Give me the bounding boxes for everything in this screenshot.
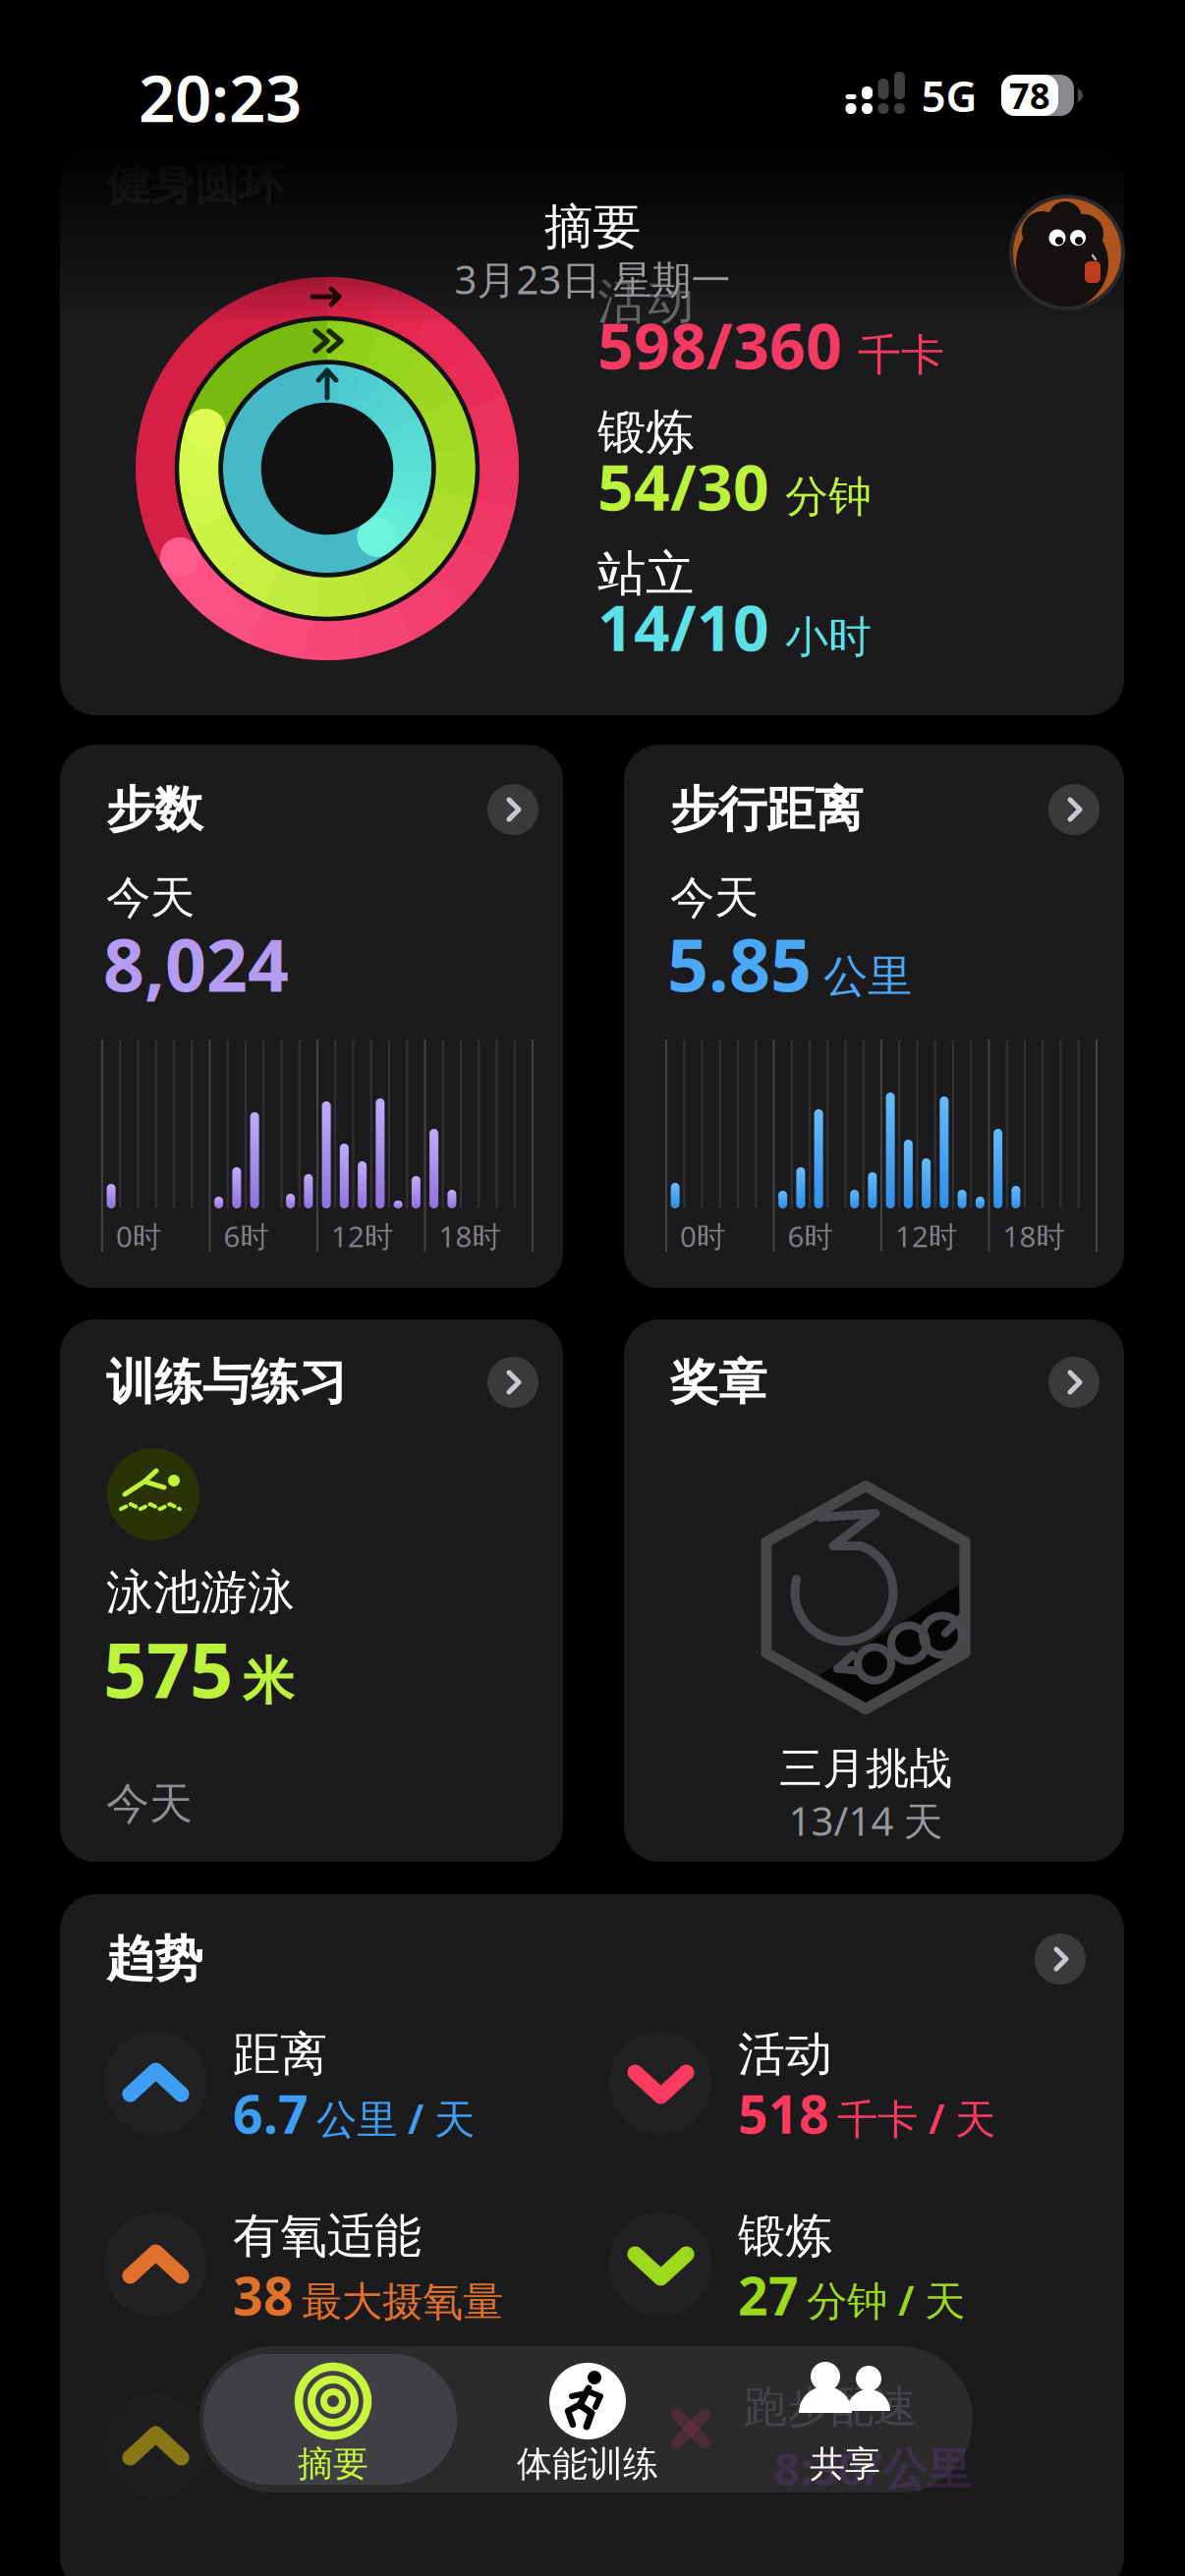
button[interactable]: 更多: [1048, 1357, 1100, 1408]
staticText: 6.7: [233, 2078, 309, 2148]
staticText: 小时: [785, 611, 872, 664]
staticText: 6时: [224, 1217, 269, 1255]
staticText: 0时: [680, 1217, 725, 1255]
staticText: 分钟 / 天: [807, 2273, 965, 2327]
button[interactable]: 更多: [1048, 784, 1100, 835]
button[interactable]: 训练与练习: [60, 1319, 563, 1862]
button[interactable]: 步行距离: [624, 745, 1124, 1288]
button[interactable]: 奖章: [624, 1319, 1124, 1862]
staticText: 锻炼: [597, 403, 694, 462]
staticText: 活动: [738, 2025, 832, 2083]
staticText: 12时: [331, 1217, 393, 1255]
button[interactable]: 步数: [60, 745, 563, 1288]
staticText: 公里: [823, 949, 912, 1004]
staticText: 575: [103, 1618, 233, 1719]
staticText: 有氧适能: [233, 2207, 422, 2265]
staticText: 公里 / 天: [316, 2091, 475, 2145]
staticText: 5G: [921, 67, 977, 124]
staticText: 今天: [106, 871, 195, 925]
staticText: 13/14 天: [789, 1794, 943, 1847]
staticText: 步数: [106, 780, 202, 839]
button[interactable]: 趋势: [60, 1894, 1124, 2576]
staticText: 步行距离: [670, 780, 863, 839]
staticText: 跑步配速: [744, 2380, 917, 2434]
staticText: 78: [1009, 72, 1050, 119]
staticText: 千卡: [858, 329, 944, 382]
button[interactable]: 更多: [487, 1357, 538, 1408]
staticText: 活动: [597, 272, 694, 331]
staticText: 38: [233, 2260, 294, 2330]
button[interactable]: 体能训练: [470, 2346, 705, 2492]
staticText: 8,024: [103, 916, 289, 1012]
staticText: 体能训练: [517, 2442, 658, 2486]
staticText: 分钟: [785, 470, 872, 523]
staticText: 距离: [233, 2025, 327, 2083]
button[interactable]: 共享: [727, 2346, 963, 2492]
staticText: 5.85: [667, 916, 812, 1012]
staticText: 今天: [106, 1777, 193, 1830]
staticText: 18时: [1003, 1217, 1065, 1255]
staticText: 共享: [810, 2442, 880, 2486]
staticText: 598/360: [597, 303, 842, 387]
button[interactable]: 更多: [487, 784, 538, 835]
staticText: 最大摄氧量: [302, 2277, 503, 2327]
staticText: 千卡 / 天: [837, 2091, 995, 2145]
staticText: 8:30/公里: [774, 2438, 971, 2498]
staticText: 6时: [788, 1217, 833, 1255]
button[interactable]: 摘要: [215, 2346, 451, 2492]
staticText: 趋势: [106, 1929, 202, 1989]
staticText: 12时: [895, 1217, 957, 1255]
button[interactable]: 健身圆环: [60, 145, 1124, 715]
staticText: 18时: [439, 1217, 501, 1255]
staticText: 米: [243, 1650, 294, 1713]
staticText: 20:23: [139, 55, 302, 140]
staticText: 摘要: [544, 197, 641, 257]
staticText: 今天: [670, 871, 759, 925]
staticText: 奖章: [670, 1353, 766, 1412]
staticText: 0时: [116, 1217, 161, 1255]
staticText: 训练与练习: [106, 1353, 347, 1412]
button[interactable]: 更多: [1035, 1933, 1086, 1985]
staticText: 健身圆环: [106, 157, 283, 212]
staticText: 泳池游泳: [106, 1564, 295, 1622]
button[interactable]: 个人资料: [1011, 196, 1123, 308]
staticText: 27: [738, 2260, 799, 2330]
staticText: 14/10: [597, 585, 769, 669]
staticText: 3月23日 星期一: [454, 253, 731, 305]
staticText: 站立: [597, 544, 694, 604]
staticText: 摘要: [298, 2442, 368, 2486]
staticText: 锻炼: [738, 2207, 832, 2265]
staticText: 54/30: [597, 445, 769, 528]
staticText: 518: [738, 2078, 829, 2148]
staticText: 三月挑战: [779, 1742, 952, 1795]
